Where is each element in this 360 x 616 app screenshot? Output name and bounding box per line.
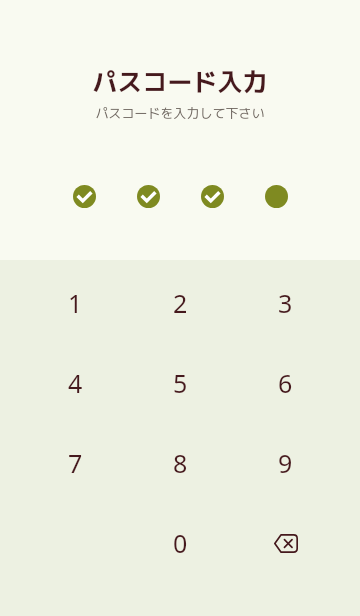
button[interactable]: 4 <box>22 343 128 423</box>
staticText: パスコードを入力して下さい <box>95 104 265 122</box>
button[interactable]: 5 <box>128 343 233 423</box>
staticText: 3 <box>278 286 293 320</box>
staticText: 2 <box>173 286 188 320</box>
button[interactable]: 0 <box>128 503 233 583</box>
staticText: 6 <box>278 366 293 400</box>
staticText: 7 <box>68 446 83 480</box>
staticText: 4 <box>68 366 83 400</box>
button[interactable]: 7 <box>22 423 128 503</box>
staticText: 9 <box>278 446 293 480</box>
button[interactable]: 2 <box>128 263 233 343</box>
button[interactable]: 6 <box>233 343 338 423</box>
button[interactable]: 9 <box>233 423 338 503</box>
staticText: 5 <box>173 366 188 400</box>
staticText: 8 <box>173 446 188 480</box>
button[interactable]: 8 <box>128 423 233 503</box>
staticText: 1 <box>68 286 83 320</box>
button[interactable]: 1 <box>22 263 128 343</box>
staticText: パスコード入力 <box>92 64 268 99</box>
button[interactable]: Delete <box>233 503 338 583</box>
staticText: 0 <box>173 526 188 560</box>
button[interactable]: 3 <box>233 263 338 343</box>
